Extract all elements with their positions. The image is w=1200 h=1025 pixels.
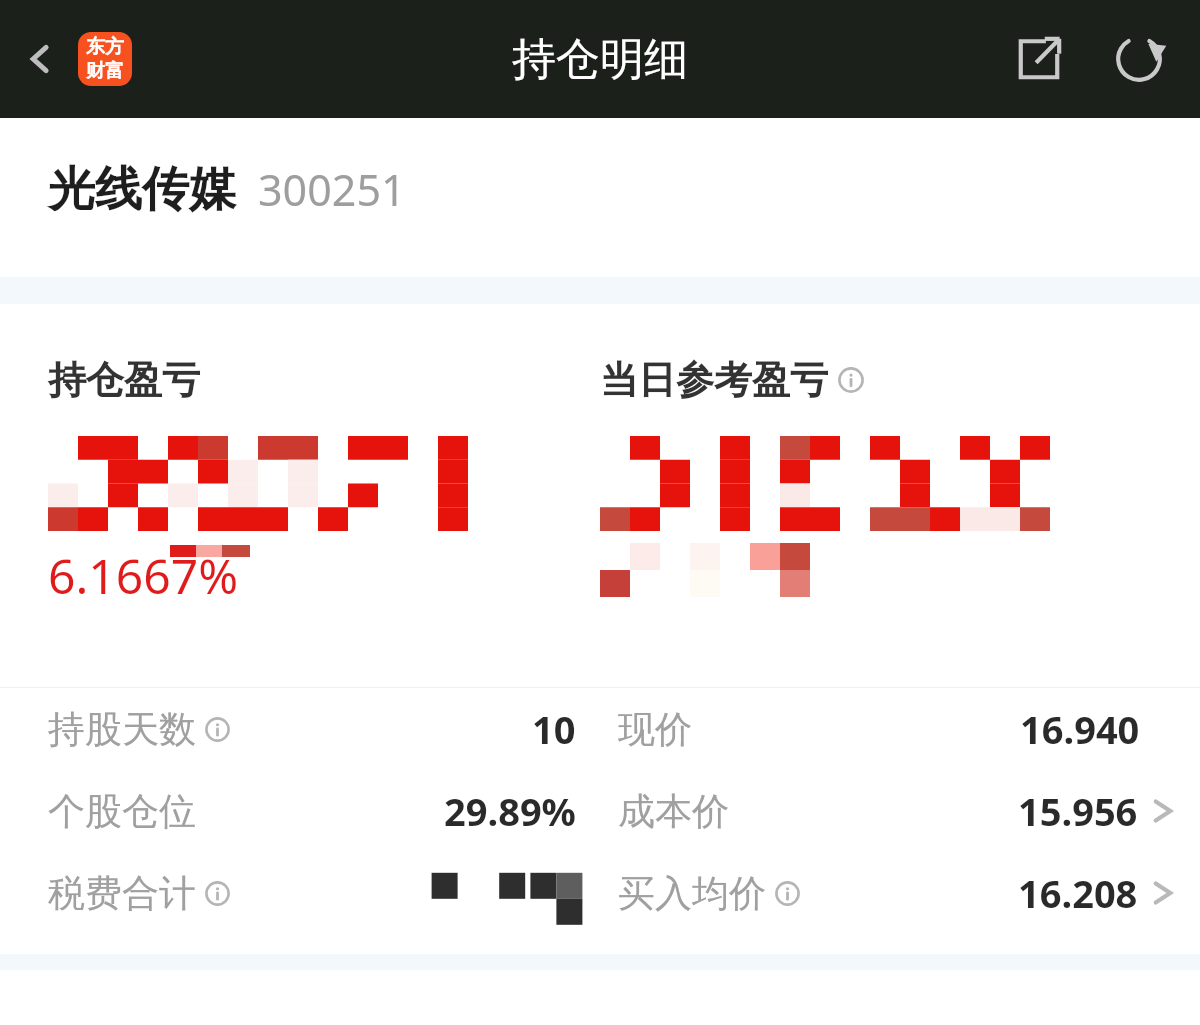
staticText: 6.1667% bbox=[48, 543, 239, 608]
button[interactable]: Back bbox=[8, 19, 72, 99]
button[interactable]: Refresh bbox=[1100, 20, 1178, 98]
button[interactable]: East Money bbox=[78, 32, 132, 86]
button[interactable]: 买入均价 bbox=[618, 852, 1176, 934]
button[interactable]: 现价 bbox=[618, 688, 1176, 770]
staticText: 现价 bbox=[618, 706, 692, 753]
staticText: 15.956 bbox=[1018, 785, 1138, 837]
button[interactable]: 持股天数 bbox=[48, 688, 576, 770]
staticText: 持股天数 bbox=[48, 706, 196, 753]
staticText: 300251 bbox=[258, 160, 406, 219]
staticText: 东方 bbox=[86, 35, 124, 59]
staticText: 16.940 bbox=[1020, 703, 1140, 755]
button[interactable]: Share bbox=[1000, 20, 1078, 98]
staticText: 光线传媒 bbox=[48, 160, 236, 219]
button[interactable]: 税费合计 bbox=[48, 852, 576, 934]
staticText: 财富 bbox=[86, 59, 124, 83]
staticText: 税费合计 bbox=[48, 870, 196, 917]
staticText: 16.208 bbox=[1018, 867, 1138, 919]
staticText: 持仓明细 bbox=[512, 32, 688, 87]
staticText: 买入均价 bbox=[618, 870, 766, 917]
staticText: 成本价 bbox=[618, 788, 729, 835]
staticText: 当日参考盈亏 bbox=[600, 356, 828, 404]
staticText: 持仓盈亏 bbox=[48, 356, 200, 404]
staticText: 29.89% bbox=[444, 785, 576, 837]
staticText: 10 bbox=[532, 703, 576, 755]
staticText: 个股仓位 bbox=[48, 788, 196, 835]
button[interactable]: 个股仓位 bbox=[48, 770, 576, 852]
button[interactable]: 成本价 bbox=[618, 770, 1176, 852]
